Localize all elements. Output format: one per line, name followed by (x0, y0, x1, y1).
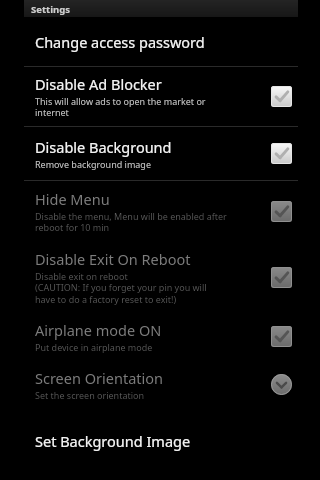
staticText: Set Background Image (35, 431, 191, 451)
button[interactable]: Change access password (24, 18, 298, 66)
button[interactable]: Disable Ad Blocker (24, 67, 298, 126)
staticText: Disable the menu, Menu will be enabled a… (35, 210, 227, 234)
button[interactable]: Disable Background (24, 127, 298, 180)
button[interactable]: Checked, disabled (271, 326, 292, 347)
staticText: Remove background image (35, 158, 151, 170)
button[interactable]: Checked (271, 143, 292, 164)
staticText: Change access password (35, 32, 205, 52)
staticText: This will allow ads to open the market o… (35, 95, 206, 119)
button[interactable]: Checked (271, 86, 292, 107)
button[interactable]: Screen Orientation (24, 360, 298, 408)
button[interactable]: Airplane mode ON (24, 312, 298, 360)
button[interactable]: Screen orientation options (271, 374, 292, 395)
button[interactable]: Hide Menu (24, 181, 298, 242)
staticText: Disable Background (35, 137, 172, 157)
button[interactable]: Disable Exit On Reboot (24, 242, 298, 312)
staticText: Disable Exit On Reboot (35, 249, 191, 269)
staticText: Disable Ad Blocker (35, 74, 162, 94)
staticText: Airplane mode ON (35, 320, 162, 340)
staticText: Screen Orientation (35, 368, 163, 388)
button[interactable]: Checked, disabled (271, 201, 292, 222)
button[interactable]: Checked, disabled (271, 267, 292, 288)
staticText: Set the screen orientation (35, 389, 145, 401)
button[interactable]: Set Background Image (24, 422, 298, 460)
staticText: Put device in airplane mode (35, 341, 153, 353)
staticText: Disable exit on reboot (CAUTION: If you … (35, 270, 207, 306)
staticText: Settings (31, 3, 70, 16)
staticText: Hide Menu (35, 189, 110, 209)
